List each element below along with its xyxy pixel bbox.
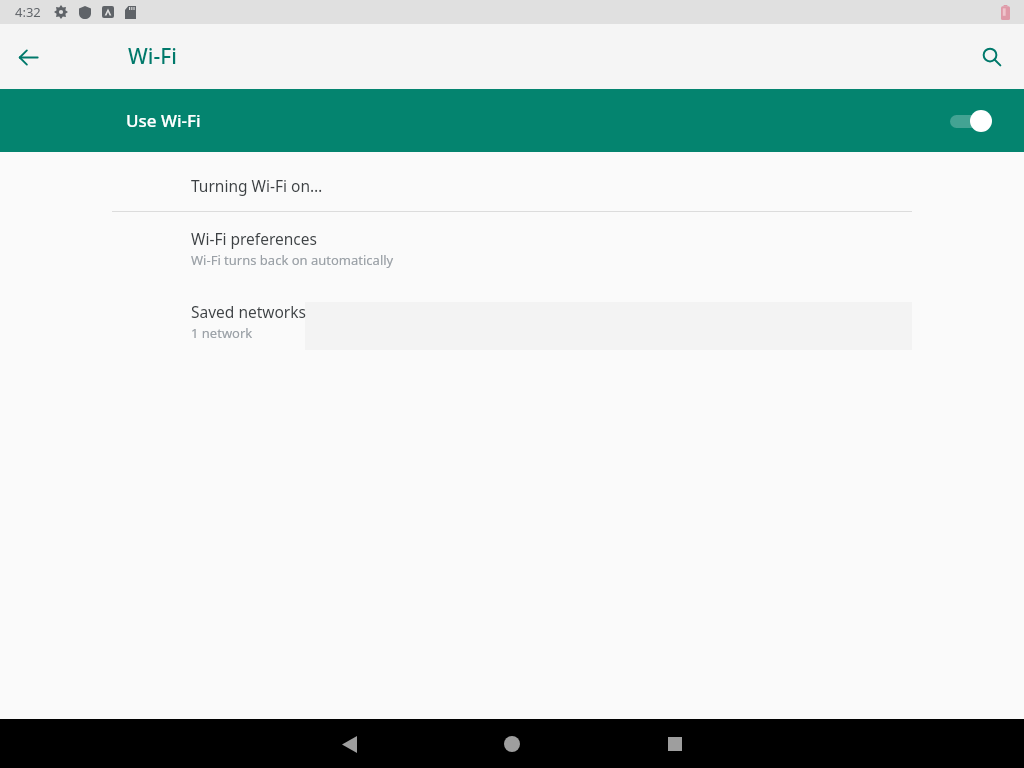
button[interactable]: Navigate up	[4, 33, 52, 81]
button[interactable]: Use Wi-Fi	[0, 89, 1024, 152]
button[interactable]: Wi-Fi preferences	[0, 212, 1024, 285]
button[interactable]: Home	[488, 720, 536, 768]
button[interactable]: Search	[968, 33, 1016, 81]
button[interactable]: Back	[325, 720, 373, 768]
staticText: Wi-Fi preferences	[191, 228, 317, 249]
button[interactable]: Turning Wi-Fi on…	[0, 159, 1024, 211]
staticText: Turning Wi-Fi on…	[191, 175, 323, 196]
button[interactable]: Saved networks	[0, 285, 1024, 358]
staticText: Wi-Fi turns back on automatically	[191, 251, 394, 269]
button[interactable]: Recent apps	[651, 720, 699, 768]
staticText: Use Wi-Fi	[126, 109, 201, 132]
staticText: 4:32	[15, 3, 41, 21]
staticText: 1 network	[191, 324, 253, 342]
staticText: Wi-Fi	[128, 42, 177, 71]
staticText: Saved networks	[191, 301, 306, 322]
